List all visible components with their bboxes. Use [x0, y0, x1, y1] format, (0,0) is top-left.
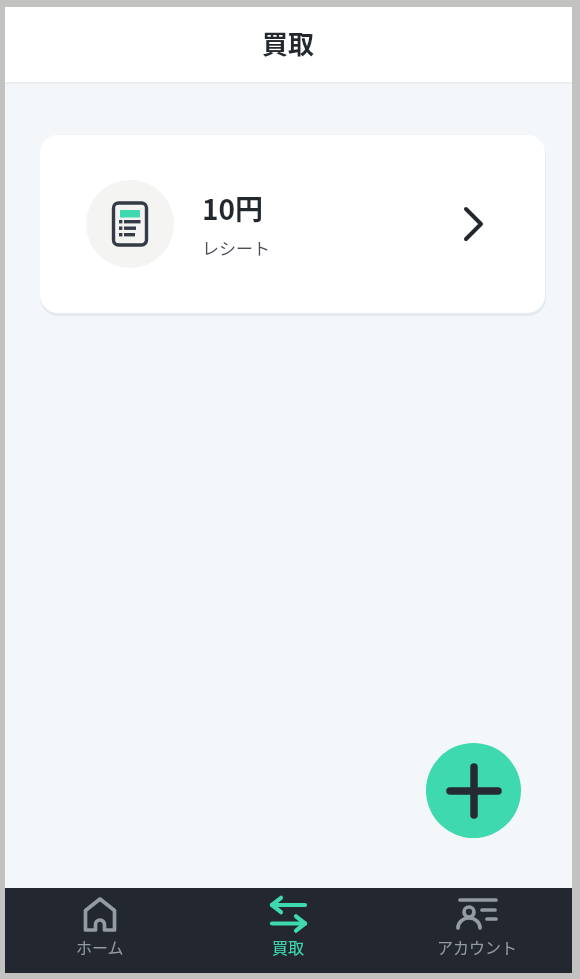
- staticText: レシート: [202, 235, 270, 260]
- staticText: 買取: [272, 935, 305, 958]
- button[interactable]: 買取: [194, 888, 383, 973]
- staticText: 買取: [262, 24, 315, 62]
- button[interactable]: 10円: [40, 135, 545, 313]
- staticText: アカウント: [437, 935, 518, 958]
- button[interactable]: アカウント: [383, 888, 572, 973]
- staticText: 10円: [202, 188, 264, 229]
- button[interactable]: [426, 743, 521, 838]
- staticText: ホーム: [76, 935, 124, 958]
- button[interactable]: ホーム: [5, 888, 194, 973]
